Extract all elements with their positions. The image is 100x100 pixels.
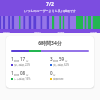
- staticText: 分: [26, 59, 29, 62]
- staticText: 時間: [14, 59, 20, 62]
- staticText: 時間: [14, 73, 20, 76]
- staticText: 1: [11, 56, 14, 62]
- staticText: 3: [50, 56, 53, 62]
- staticText: 03:56: [49, 30, 73, 33]
- staticText: 17: [20, 56, 26, 62]
- staticText: 1: [11, 70, 14, 76]
- staticText: いつものユーザーよりも良い睡眠です: [0, 9, 100, 13]
- staticText: レム睡眠 16%: [14, 77, 31, 81]
- staticText: 分: [26, 73, 29, 76]
- staticText: 分: [53, 73, 56, 76]
- staticText: 分: [65, 59, 68, 62]
- staticText: 0: [50, 70, 53, 76]
- staticText: 7/2: [46, 1, 54, 8]
- staticText: 浅い睡眠 62%: [53, 63, 70, 67]
- staticText: 00:41: [26, 30, 49, 33]
- staticText: 08: [20, 70, 26, 76]
- staticText: 覚醒時間: [53, 77, 64, 80]
- staticText: 22:34: [3, 30, 26, 33]
- staticText: 04:58: [73, 30, 97, 33]
- staticText: 時間: [53, 59, 59, 62]
- button[interactable]: 6時間34分: [6, 36, 94, 88]
- staticText: 深い睡眠 22%: [14, 63, 31, 67]
- staticText: 6時間34分: [11, 40, 89, 47]
- staticText: 59: [59, 56, 65, 62]
